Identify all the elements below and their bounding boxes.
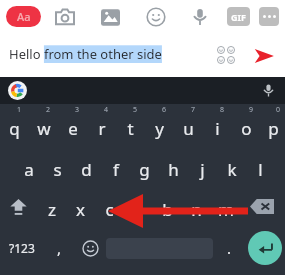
button[interactable]: ?123 <box>0 226 44 270</box>
button[interactable]: l <box>246 146 275 186</box>
staticText: d <box>81 158 92 181</box>
staticText: h <box>168 158 179 181</box>
staticText: 8 <box>220 105 225 115</box>
button[interactable]: Emoji <box>215 44 236 65</box>
staticText: 7 <box>191 105 196 115</box>
staticText: n <box>191 198 202 221</box>
staticText: 6 <box>162 105 167 115</box>
staticText: q <box>9 117 20 140</box>
staticText: 2 <box>46 105 51 115</box>
staticText: i <box>215 117 220 140</box>
button[interactable]: Gallery <box>99 6 121 28</box>
button[interactable]: GIF <box>227 7 250 26</box>
button[interactable]: f <box>101 146 130 186</box>
button[interactable]: c <box>95 186 124 226</box>
button[interactable]: Stickers <box>145 6 167 28</box>
button[interactable]: 3 <box>58 104 87 146</box>
button[interactable]: Camera <box>54 6 76 28</box>
staticText: c <box>105 198 114 221</box>
staticText: Aa <box>17 9 31 24</box>
button[interactable]: More options <box>259 7 279 26</box>
staticText: l <box>258 158 263 181</box>
button[interactable]: Voice message <box>189 6 211 28</box>
button[interactable]: Voice input <box>259 81 278 100</box>
staticText: j <box>200 158 205 181</box>
staticText: r <box>98 117 106 140</box>
staticText: o <box>241 117 252 140</box>
staticText: z <box>48 198 56 221</box>
button[interactable]: Send <box>252 44 276 68</box>
button[interactable]: x <box>66 186 95 226</box>
staticText: s <box>53 158 62 181</box>
button[interactable]: s <box>43 146 72 186</box>
button[interactable]: m <box>211 186 240 226</box>
button[interactable]: g <box>130 146 159 186</box>
button[interactable]: d <box>72 146 101 186</box>
staticText: 9 <box>249 105 254 115</box>
button[interactable]: b <box>153 186 182 226</box>
button[interactable]: 4 <box>87 104 116 146</box>
staticText: 3 <box>75 105 80 115</box>
staticText: t <box>127 117 134 140</box>
staticText: Hello from the other side <box>9 45 162 63</box>
button[interactable]: Text formatting <box>6 6 41 27</box>
button[interactable]: 2 <box>29 104 58 146</box>
staticText: ?123 <box>9 240 35 256</box>
button[interactable]: h <box>159 146 188 186</box>
staticText: , <box>57 238 62 258</box>
button[interactable]: , <box>44 226 74 270</box>
button[interactable]: n <box>182 186 211 226</box>
staticText: 0 <box>276 105 281 115</box>
button[interactable]: Hello from the other side <box>9 45 162 63</box>
button[interactable]: k <box>217 146 246 186</box>
button[interactable]: Google Search <box>8 81 27 100</box>
staticText: u <box>183 117 194 140</box>
staticText: k <box>227 158 237 181</box>
button[interactable]: 6 <box>145 104 174 146</box>
button[interactable]: . <box>213 226 245 270</box>
button[interactable]: Shift <box>0 186 37 226</box>
staticText: w <box>37 117 51 140</box>
staticText: e <box>68 117 78 140</box>
button[interactable]: 5 <box>116 104 145 146</box>
button[interactable]: 0 <box>261 104 285 146</box>
button[interactable]: Delete <box>240 186 284 226</box>
staticText: b <box>162 198 173 221</box>
staticText: . <box>227 238 232 258</box>
staticText: p <box>268 117 279 140</box>
staticText: 1 <box>17 105 22 115</box>
button[interactable]: Emoji keyboard <box>74 226 106 270</box>
staticText: y <box>155 117 164 140</box>
staticText: x <box>76 198 85 221</box>
button[interactable]: z <box>37 186 66 226</box>
staticText: a <box>24 158 34 181</box>
button[interactable]: Enter <box>248 231 282 265</box>
button[interactable]: a <box>14 146 43 186</box>
button[interactable]: 7 <box>174 104 203 146</box>
button[interactable]: 8 <box>203 104 232 146</box>
staticText: f <box>113 158 119 181</box>
button[interactable]: 1 <box>0 104 29 146</box>
staticText: g <box>139 158 150 181</box>
button[interactable]: v <box>124 186 153 226</box>
button[interactable]: j <box>188 146 217 186</box>
staticText: m <box>218 198 234 221</box>
staticText: 4 <box>104 105 109 115</box>
button[interactable]: 9 <box>232 104 261 146</box>
staticText: GIF <box>231 11 246 23</box>
staticText: 5 <box>133 105 138 115</box>
